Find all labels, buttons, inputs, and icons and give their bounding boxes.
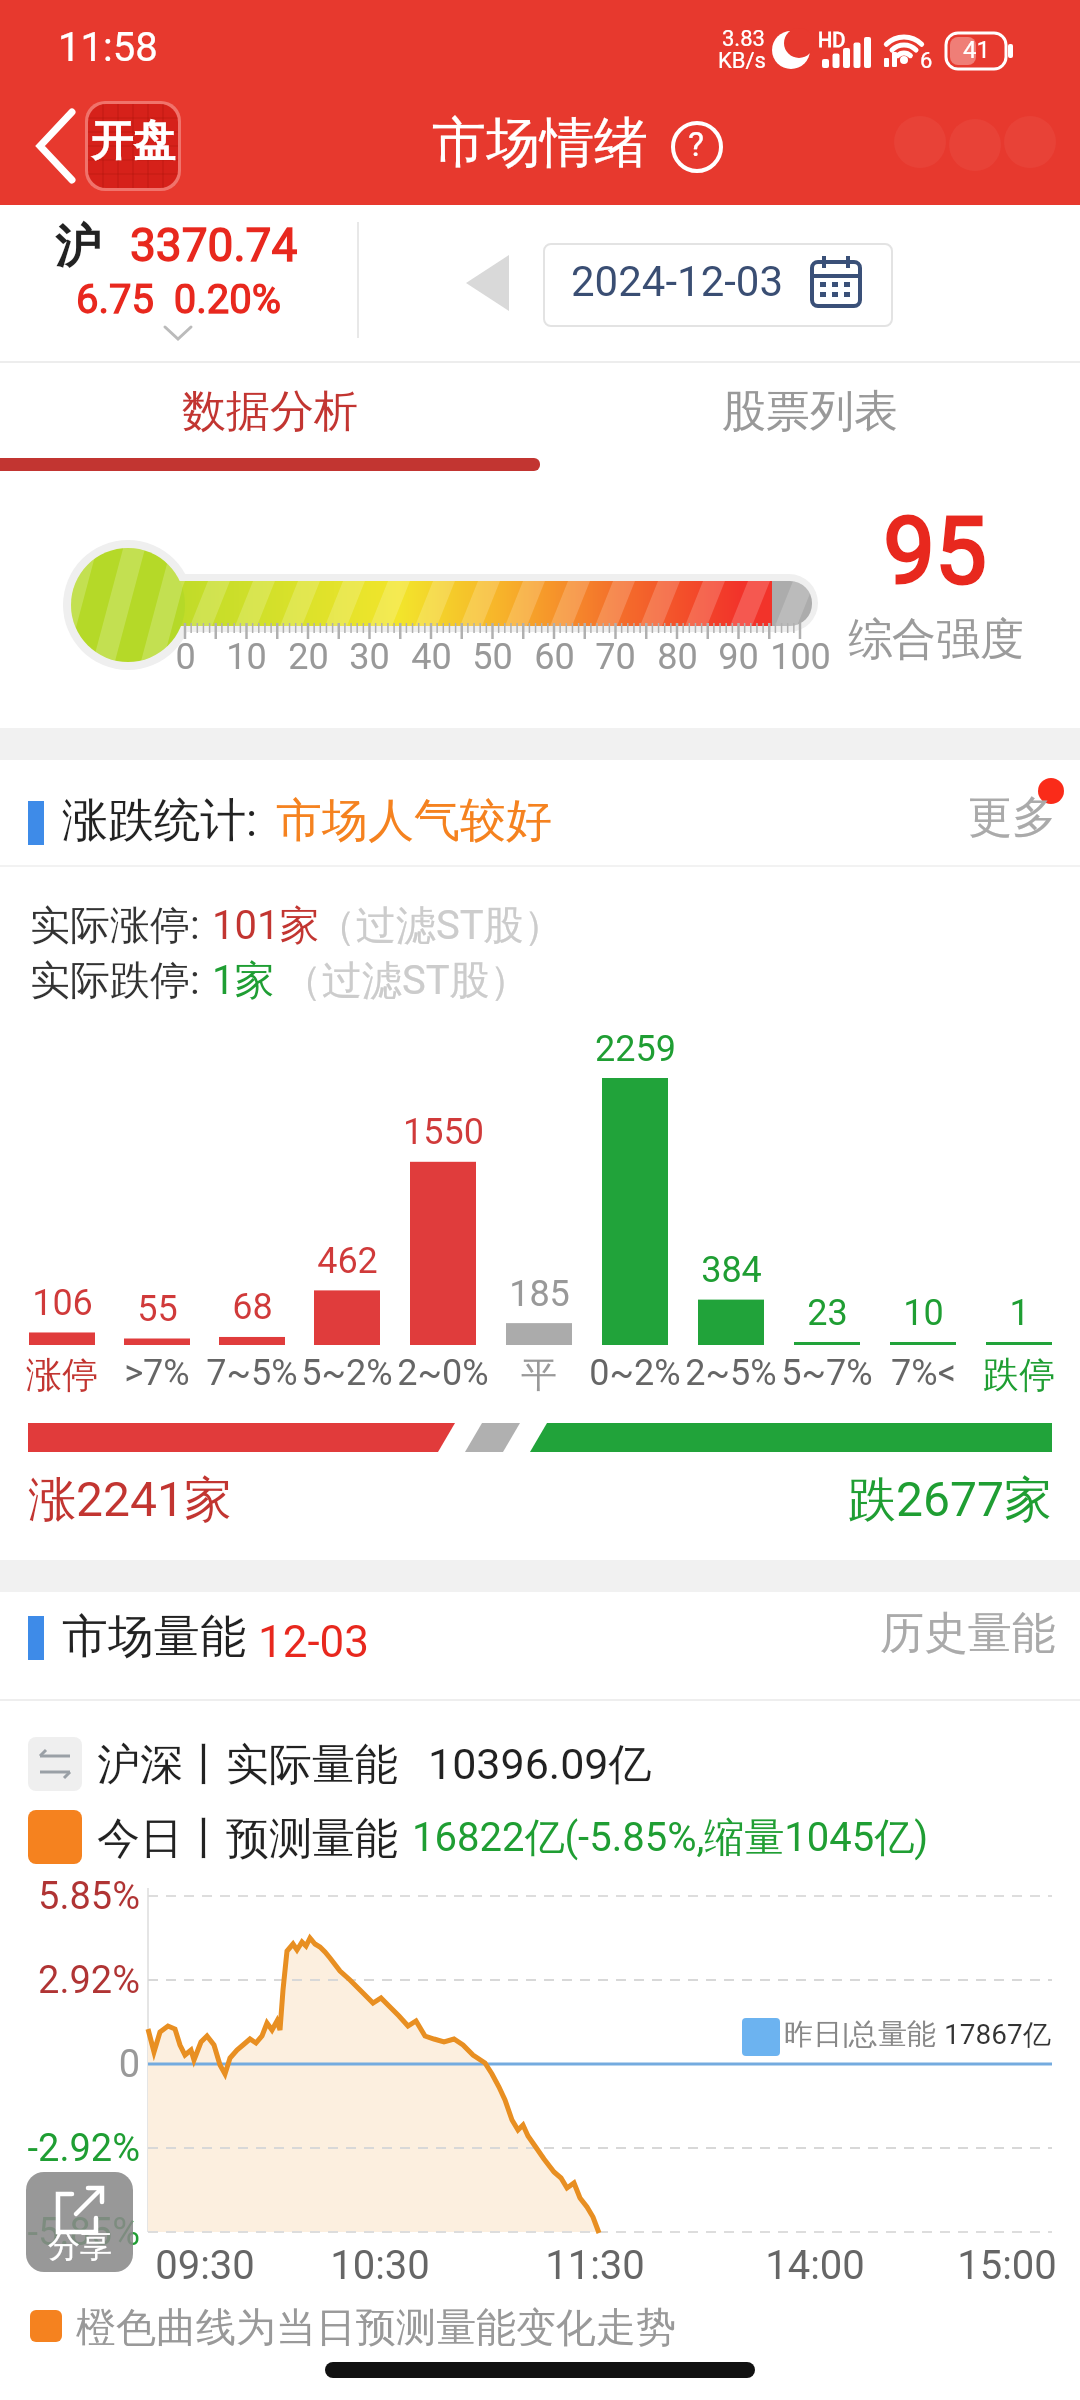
button[interactable]	[450, 240, 530, 324]
staticText: 185	[509, 1273, 570, 1315]
button[interactable]: 2024-12-03	[543, 243, 893, 327]
staticText: 2~0%	[397, 1352, 489, 1394]
staticText: 沪深丨实际量能	[97, 1738, 398, 1792]
staticText: 30	[349, 636, 390, 678]
staticText: 3.83	[722, 26, 765, 52]
staticText: 市场情绪	[432, 109, 648, 177]
staticText: 100	[770, 636, 831, 678]
staticText: 市场人气较好	[276, 792, 552, 850]
staticText: 15:00	[957, 2242, 1057, 2289]
staticText: 股票列表	[722, 384, 898, 439]
staticText: （过滤ST股）	[282, 955, 530, 1005]
staticText: 1550	[403, 1111, 484, 1153]
staticText: 10	[226, 636, 267, 678]
button[interactable]: 历史量能	[870, 1606, 1060, 1670]
staticText: -2.92%	[27, 2126, 140, 2171]
staticText: 11:58	[58, 24, 158, 71]
staticText: 更多	[968, 790, 1056, 845]
staticText: ?	[688, 124, 705, 164]
staticText: 0	[175, 636, 196, 678]
staticText: 7%<	[891, 1352, 956, 1394]
staticText: 5.85%	[38, 1874, 140, 1919]
staticText: 1家	[212, 955, 275, 1005]
staticText: 2~5%	[685, 1352, 777, 1394]
staticText: 2.92%	[38, 1958, 140, 2003]
staticText: 5~7%	[781, 1352, 873, 1394]
staticText: 50	[472, 636, 513, 678]
staticText: 6.75 0.20%	[76, 276, 282, 323]
staticText: 90	[718, 636, 759, 678]
staticText: 09:30	[155, 2242, 255, 2289]
staticText: 17867亿	[944, 2017, 1051, 2052]
staticText: 3370.74	[130, 218, 298, 272]
staticText: 涨跌统计:	[62, 792, 258, 850]
staticText: （过滤ST股）	[316, 900, 564, 950]
staticText: 462	[317, 1240, 378, 1282]
staticText: >7%	[124, 1352, 190, 1394]
staticText: 开盘	[91, 115, 175, 168]
staticText: 昨日|总量能	[784, 2016, 937, 2053]
button[interactable]	[668, 120, 728, 178]
staticText: 10	[903, 1292, 944, 1334]
staticText: KB/s	[718, 48, 766, 74]
staticText: 橙色曲线为当日预测量能变化走势	[76, 2302, 676, 2352]
staticText: 实际涨停:	[30, 900, 200, 950]
staticText: 16822亿(-5.85%,缩量1045亿)	[412, 1812, 929, 1862]
staticText: 95	[883, 498, 987, 606]
staticText: 跌2677家	[848, 1470, 1052, 1530]
staticText: 12-03	[258, 1616, 370, 1668]
staticText: 今日丨预测量能	[97, 1812, 398, 1866]
staticText: 涨2241家	[28, 1470, 232, 1530]
staticText: 20	[288, 636, 329, 678]
button[interactable]	[84, 96, 190, 194]
staticText: 55	[137, 1288, 178, 1330]
staticText: 历史量能	[880, 1606, 1056, 1661]
staticText: 沪	[55, 218, 101, 276]
staticText: -5.85%	[27, 2210, 140, 2255]
staticText: 2024-12-03	[571, 257, 784, 306]
staticText: 68	[232, 1286, 273, 1328]
staticText: 10396.09亿	[428, 1738, 652, 1792]
staticText: 40	[411, 636, 452, 678]
button[interactable]: 分享	[26, 2172, 133, 2272]
staticText: 6	[920, 48, 933, 74]
staticText: 14:00	[765, 2242, 865, 2289]
button[interactable]: 更多	[950, 790, 1060, 854]
staticText: 跌停	[983, 1352, 1055, 1397]
staticText: 综合强度	[848, 612, 1024, 667]
staticText: 5~2%	[301, 1352, 393, 1394]
staticText: 实际跌停:	[30, 955, 200, 1005]
staticText: 2259	[595, 1028, 676, 1070]
staticText: 80	[657, 636, 698, 678]
staticText: 1	[1009, 1292, 1030, 1334]
staticText: 0~2%	[589, 1352, 681, 1394]
staticText: HD	[818, 28, 846, 51]
button[interactable]: 股票列表	[540, 364, 1080, 458]
staticText: 0	[118, 2042, 140, 2087]
staticText: 11:30	[545, 2242, 645, 2289]
staticText: 涨停	[26, 1352, 98, 1397]
staticText: 平	[521, 1352, 557, 1397]
staticText: 384	[701, 1249, 762, 1291]
staticText: 60	[534, 636, 575, 678]
staticText: 7~5%	[206, 1352, 298, 1394]
staticText: 23	[807, 1292, 848, 1334]
staticText: 10:30	[330, 2242, 430, 2289]
button[interactable]: 数据分析	[0, 364, 540, 458]
staticText: 分享	[48, 2226, 112, 2266]
staticText: 市场量能	[62, 1608, 246, 1666]
staticText: 101家	[212, 900, 320, 950]
staticText: 41	[963, 36, 990, 64]
staticText: 数据分析	[182, 384, 358, 439]
staticText: 70	[595, 636, 636, 678]
staticText: 106	[32, 1282, 93, 1324]
button[interactable]	[20, 100, 90, 190]
